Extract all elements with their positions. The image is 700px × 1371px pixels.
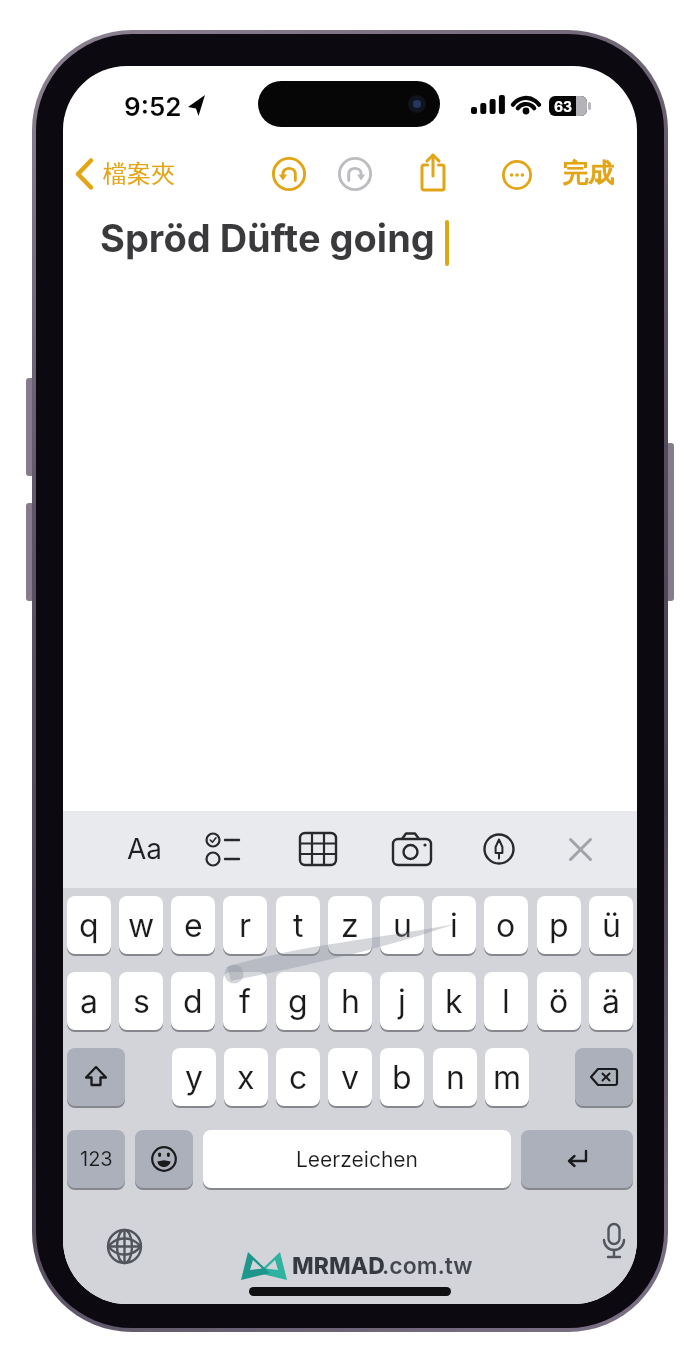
- button[interactable]: t: [276, 896, 320, 954]
- staticText: a: [80, 982, 98, 1021]
- button[interactable]: r: [223, 896, 267, 954]
- staticText: MRMAD: [292, 1252, 385, 1280]
- button[interactable]: g: [276, 972, 320, 1030]
- button[interactable]: b: [380, 1048, 424, 1106]
- button[interactable]: m: [485, 1048, 529, 1106]
- staticText: ö: [549, 982, 569, 1021]
- staticText: 檔案夾: [103, 159, 175, 189]
- button[interactable]: o: [484, 896, 528, 954]
- staticText: 9:52: [124, 91, 182, 122]
- button[interactable]: d: [171, 972, 215, 1030]
- staticText: y: [185, 1058, 203, 1097]
- button[interactable]: n: [433, 1048, 477, 1106]
- button[interactable]: [392, 832, 432, 866]
- button[interactable]: p: [537, 896, 581, 954]
- button[interactable]: q: [67, 896, 111, 954]
- staticText: Aa: [127, 832, 163, 866]
- staticText: ä: [602, 982, 620, 1021]
- button[interactable]: [272, 157, 306, 191]
- button[interactable]: Leerzeichen: [203, 1130, 511, 1188]
- button[interactable]: [75, 158, 95, 190]
- staticText: p: [549, 906, 569, 945]
- button[interactable]: [521, 1130, 633, 1188]
- staticText: ü: [602, 906, 621, 945]
- staticText: d: [183, 982, 203, 1021]
- button[interactable]: ä: [589, 972, 633, 1030]
- staticText: r: [239, 906, 252, 945]
- button[interactable]: l: [484, 972, 528, 1030]
- staticText: h: [341, 982, 360, 1021]
- button[interactable]: i: [432, 896, 476, 954]
- staticText: s: [133, 982, 150, 1021]
- staticText: o: [496, 906, 516, 945]
- button[interactable]: [418, 152, 448, 194]
- button[interactable]: x: [224, 1048, 268, 1106]
- staticText: u: [393, 906, 412, 945]
- button[interactable]: [483, 833, 515, 865]
- button[interactable]: 完成: [538, 156, 637, 190]
- button[interactable]: Aa: [119, 828, 171, 870]
- button[interactable]: e: [171, 896, 215, 954]
- staticText: z: [341, 906, 359, 945]
- staticText: n: [446, 1058, 465, 1097]
- staticText: 123: [80, 1147, 113, 1171]
- button[interactable]: [299, 832, 337, 866]
- button[interactable]: ö: [537, 972, 581, 1030]
- button[interactable]: ü: [589, 896, 633, 954]
- button[interactable]: [205, 831, 241, 867]
- staticText: m: [493, 1058, 522, 1097]
- button[interactable]: [258, 81, 440, 127]
- button[interactable]: [338, 157, 372, 191]
- button[interactable]: y: [172, 1048, 216, 1106]
- button[interactable]: w: [119, 896, 163, 954]
- button[interactable]: c: [276, 1048, 320, 1106]
- button[interactable]: v: [328, 1048, 372, 1106]
- staticText: 63: [554, 98, 573, 115]
- staticText: 完成: [562, 157, 614, 190]
- button[interactable]: [599, 1222, 629, 1264]
- staticText: b: [392, 1058, 412, 1097]
- button[interactable]: [67, 1048, 125, 1106]
- button[interactable]: [502, 160, 532, 190]
- button[interactable]: h: [328, 972, 372, 1030]
- button[interactable]: [575, 1048, 633, 1106]
- button[interactable]: 123: [67, 1130, 125, 1188]
- staticText: c: [289, 1058, 308, 1097]
- button[interactable]: [569, 838, 592, 861]
- staticText: w: [128, 906, 155, 945]
- button[interactable]: [135, 1130, 193, 1188]
- staticText: j: [398, 982, 406, 1021]
- button[interactable]: f: [223, 972, 267, 1030]
- staticText: v: [341, 1058, 359, 1097]
- staticText: e: [184, 906, 203, 945]
- staticText: t: [293, 906, 304, 945]
- staticText: l: [502, 982, 510, 1021]
- staticText: f: [239, 982, 251, 1021]
- staticText: x: [237, 1058, 255, 1097]
- button[interactable]: z: [328, 896, 372, 954]
- button[interactable]: [106, 1228, 143, 1265]
- button[interactable]: k: [432, 972, 476, 1030]
- button[interactable]: a: [67, 972, 111, 1030]
- button[interactable]: u: [380, 896, 424, 954]
- staticText: g: [288, 982, 308, 1021]
- button[interactable]: s: [119, 972, 163, 1030]
- staticText: .com.tw: [382, 1252, 473, 1280]
- staticText: Spröd Düfte going: [100, 215, 435, 261]
- button[interactable]: j: [380, 972, 424, 1030]
- staticText: i: [450, 906, 458, 945]
- button[interactable]: 檔案夾: [103, 158, 183, 190]
- staticText: k: [445, 982, 463, 1021]
- staticText: q: [79, 906, 99, 945]
- staticText: Leerzeichen: [296, 1147, 418, 1172]
